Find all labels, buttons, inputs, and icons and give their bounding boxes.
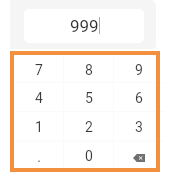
button[interactable]: 4: [14, 83, 64, 113]
staticText: 5: [85, 90, 93, 106]
button[interactable]: 8: [64, 56, 114, 84]
other: Number pad: [10, 51, 160, 172]
staticText: 9: [135, 62, 143, 78]
button[interactable]: 1: [14, 112, 64, 141]
other: Backspace: [133, 154, 145, 162]
staticText: 2: [85, 119, 93, 135]
staticText: 4: [35, 90, 43, 106]
staticText: 0: [85, 148, 93, 164]
staticText: 7: [35, 62, 43, 78]
button[interactable]: 9: [114, 56, 164, 84]
staticText: .: [37, 149, 41, 165]
staticText: 999: [70, 16, 99, 36]
button[interactable]: 7: [14, 56, 64, 84]
staticText: 1: [35, 119, 43, 135]
button[interactable]: 3: [114, 112, 164, 141]
staticText: 6: [135, 90, 143, 106]
button[interactable]: 6: [114, 83, 164, 113]
staticText: 8: [85, 62, 93, 78]
button[interactable]: 5: [64, 83, 114, 113]
staticText: 3: [135, 119, 143, 135]
button[interactable]: .: [14, 142, 64, 170]
button[interactable]: Backspace: [114, 142, 164, 170]
button[interactable]: 2: [64, 112, 114, 141]
button[interactable]: 0: [64, 142, 114, 170]
button[interactable]: 999: [24, 9, 144, 43]
